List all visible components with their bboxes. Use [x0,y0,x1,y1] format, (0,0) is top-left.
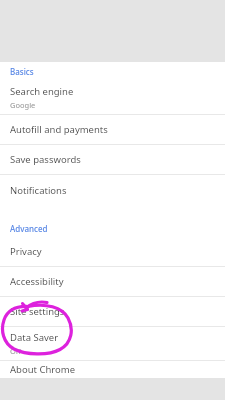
staticText: Notifications [10,184,67,197]
button[interactable]: Site settings [0,297,225,326]
staticText: Google [10,100,36,110]
staticText: Basics [10,66,34,77]
staticText: Autofill and payments [10,123,108,136]
staticText: Site settings [10,305,65,318]
button[interactable]: About Chrome [0,361,225,378]
button[interactable]: Data Saver [0,327,225,360]
button[interactable]: Autofill and payments [0,115,225,144]
button[interactable]: Save passwords [0,145,225,174]
button[interactable]: Notifications [0,175,225,205]
staticText: Search engine [10,85,74,98]
button[interactable]: Search engine [0,80,225,114]
button[interactable]: Accessibility [0,267,225,296]
staticText: About Chrome [10,363,76,376]
staticText: Data Saver [10,331,59,344]
staticText: Advanced [10,223,48,234]
staticText: Off [10,346,22,356]
staticText: Save passwords [10,153,81,166]
staticText: Accessibility [10,275,64,288]
staticText: Privacy [10,245,42,258]
button[interactable]: Privacy [0,237,225,266]
